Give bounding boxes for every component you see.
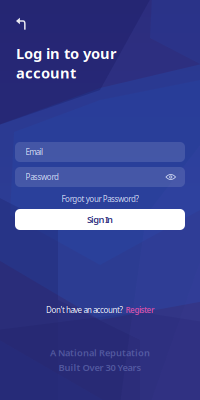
button[interactable]: Email [15,142,185,162]
staticText: A National Reputation [50,346,150,359]
staticText: Forgot your Password? [61,194,138,204]
staticText: Log in to your account [16,43,117,82]
button[interactable]: Back [11,13,31,35]
staticText: Sign In [87,213,113,226]
staticText: Don't have an account? [46,305,122,315]
button[interactable]: Don't have an account? [0,303,200,317]
button[interactable]: Forgot your Password? [15,193,185,205]
staticText: Register [125,305,154,315]
staticText: Email [25,147,43,157]
button[interactable]: Sign In [15,209,185,230]
staticText: Password [25,172,59,182]
button[interactable]: Password [15,167,185,187]
staticText: Built Over 30 Years [58,361,141,373]
